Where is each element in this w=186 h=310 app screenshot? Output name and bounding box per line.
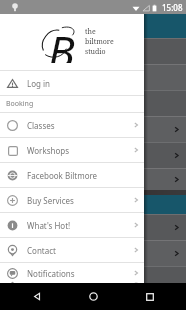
staticText: Notifications: [27, 268, 75, 279]
button[interactable]: Log in: [0, 71, 144, 95]
staticText: Workshops: [27, 145, 70, 156]
staticText: What's Hot!: [27, 220, 71, 231]
button[interactable]: Facebook Biltmore: [0, 163, 144, 187]
other: Log in: [7, 78, 18, 89]
staticText: studio: [85, 47, 106, 57]
staticText: biltmore: [85, 37, 114, 47]
staticText: Facebook Biltmore: [27, 170, 98, 181]
staticText: the: [85, 27, 96, 37]
staticText: Booking: [6, 99, 34, 109]
button[interactable]: Contact: [0, 238, 144, 262]
staticText: 15:08: [162, 2, 183, 13]
button[interactable]: What's Hot!: [0, 213, 144, 237]
staticText: Contact: [27, 245, 56, 256]
staticText: Classes: [27, 120, 55, 131]
button[interactable]: Back: [17, 283, 57, 310]
button[interactable]: Home: [73, 283, 113, 310]
staticText: B: [48, 21, 75, 63]
staticText: Log in: [27, 78, 51, 89]
button[interactable]: Notifications: [0, 263, 144, 283]
staticText: Buy Services: [27, 195, 74, 206]
button[interactable]: Buy Services: [0, 188, 144, 212]
button[interactable]: Recent apps: [130, 283, 170, 310]
button[interactable]: Classes: [0, 113, 144, 137]
button[interactable]: Workshops: [0, 138, 144, 162]
